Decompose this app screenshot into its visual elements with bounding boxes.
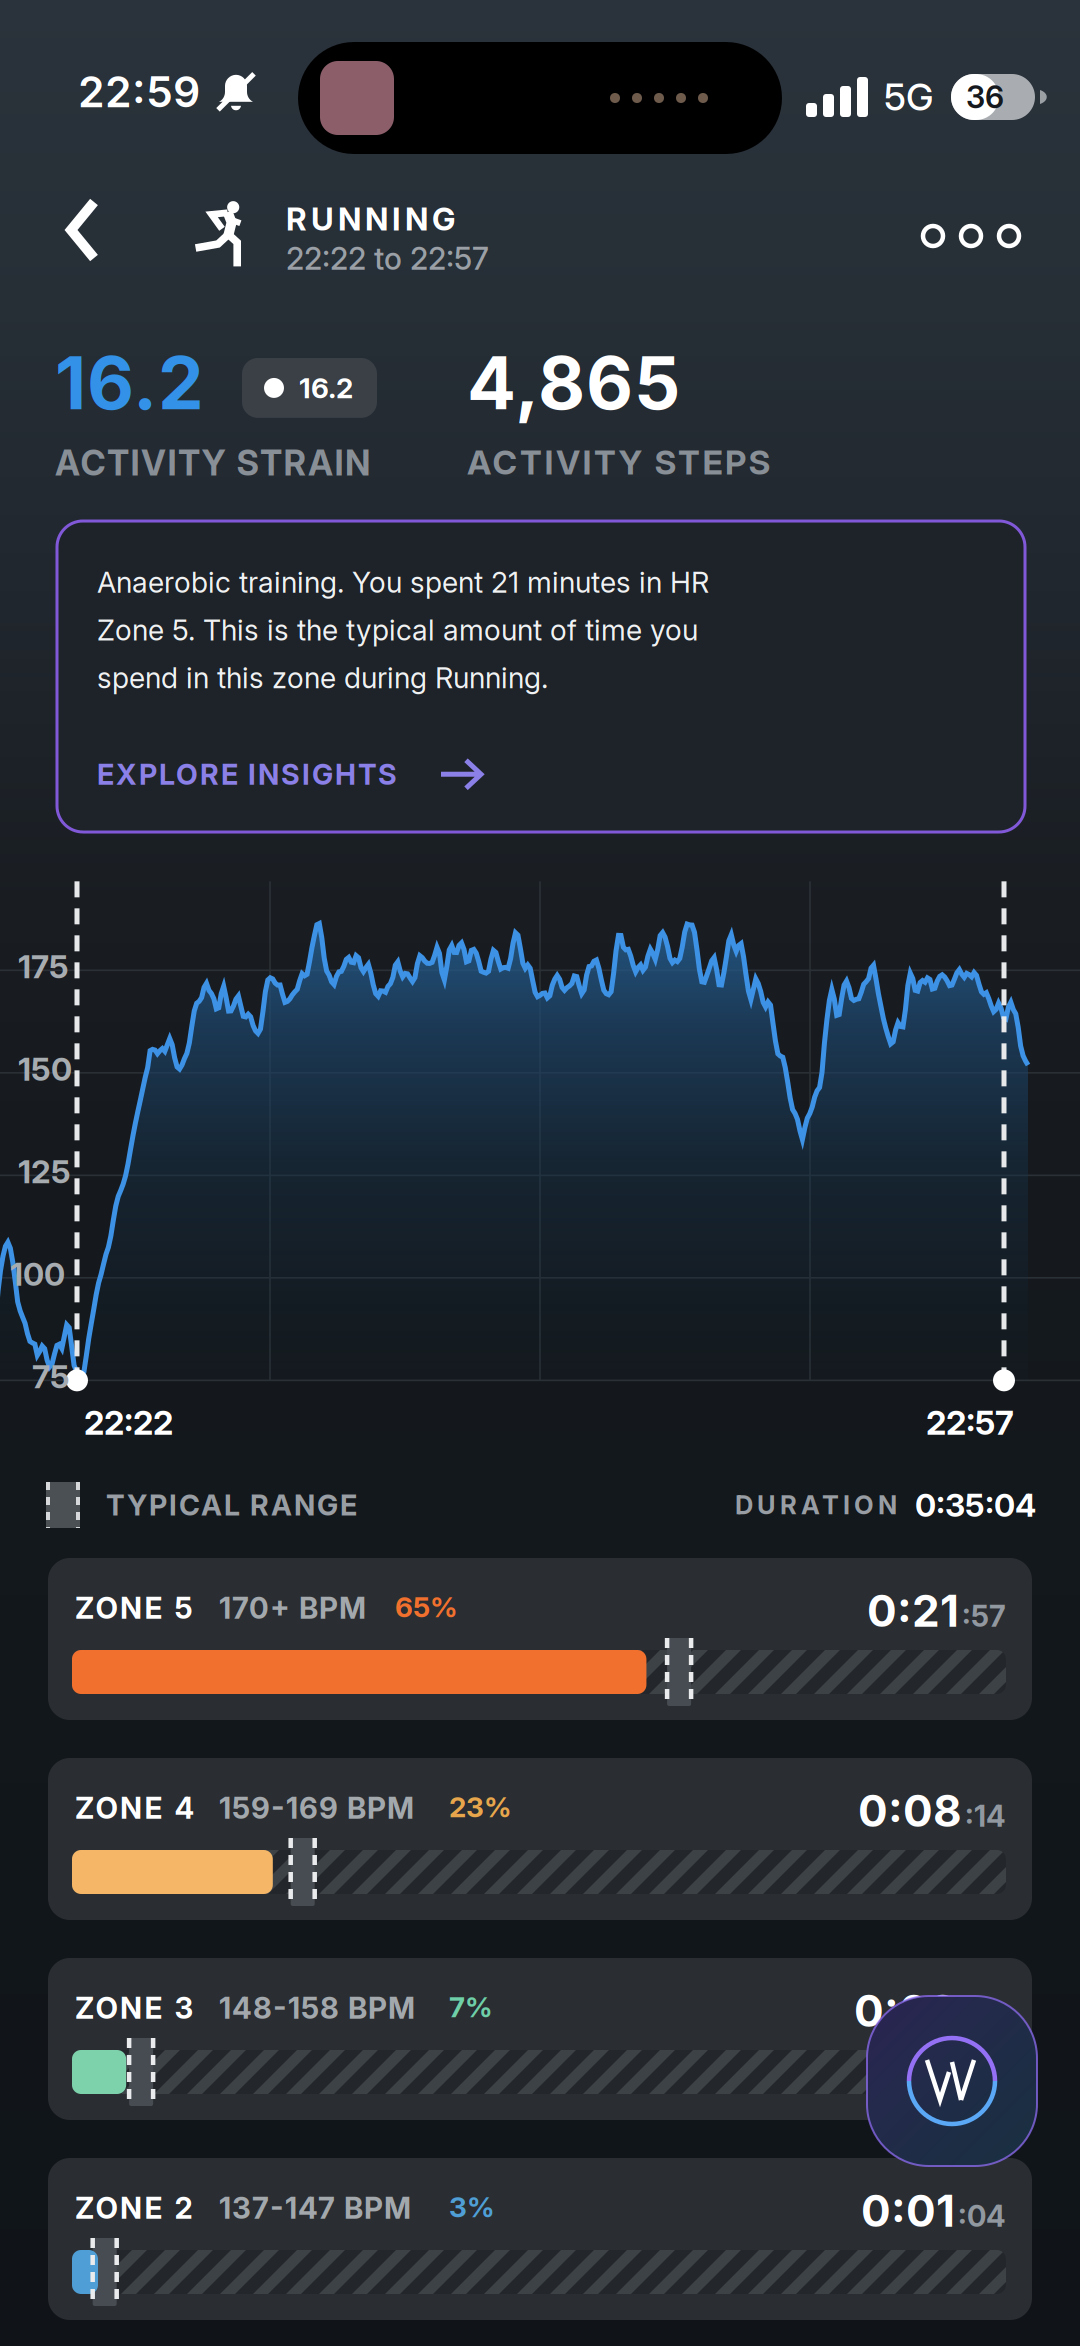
staticText: ACTIVITY STEPS — [467, 442, 770, 483]
staticText: 4,865 — [467, 339, 680, 427]
staticText: 100 — [10, 1255, 65, 1293]
staticText: 0:35:04 — [915, 1486, 1036, 1524]
staticText: 159-169 BPM — [219, 1790, 414, 1826]
button[interactable]: ZONE 3 — [48, 1958, 1032, 2120]
staticText: EXPLORE INSIGHTS — [97, 757, 397, 791]
staticText: ZONE 3 — [75, 1990, 193, 2026]
staticText: 0:02 — [854, 1984, 957, 2037]
staticText: 7% — [449, 1990, 493, 2024]
staticText: ZONE 5 — [75, 1590, 192, 1626]
staticText: Anaerobic training. You spent 21 minutes… — [97, 565, 709, 600]
staticText: ACTIVITY STRAIN — [55, 442, 370, 484]
staticText: 22:22 — [84, 1402, 173, 1443]
staticText: RUNNING — [286, 200, 455, 238]
staticText: 16.2 — [55, 339, 204, 427]
staticText: Zone 5. This is the typical amount of ti… — [97, 613, 698, 647]
staticText: 16.2 — [299, 371, 353, 405]
staticText: :29 — [960, 1998, 1006, 2034]
staticText: 170+ BPM — [219, 1590, 366, 1626]
button[interactable]: ZONE 2 — [48, 2158, 1032, 2320]
staticText: DURATION — [735, 1489, 897, 1520]
staticText: 3% — [449, 2190, 495, 2224]
button[interactable]: WHOOP Coach — [867, 1996, 1037, 2166]
button[interactable]: More options — [906, 186, 1036, 286]
button[interactable]: ZONE 5 — [48, 1558, 1032, 1720]
staticText: :14 — [965, 1798, 1006, 1834]
staticText: 23% — [449, 1790, 512, 1824]
staticText: 175 — [18, 947, 69, 986]
staticText: ZONE 4 — [75, 1790, 194, 1826]
staticText: 65% — [395, 1590, 458, 1624]
staticText: ZONE 2 — [75, 2190, 192, 2226]
staticText: 36 — [966, 78, 1004, 115]
button[interactable]: Back — [52, 170, 172, 300]
staticText: TYPICAL RANGE — [106, 1488, 357, 1522]
staticText: 5G — [884, 74, 933, 120]
staticText: 150 — [18, 1050, 72, 1088]
button[interactable]: EXPLORE INSIGHTS — [97, 749, 485, 799]
staticText: 125 — [18, 1152, 71, 1191]
staticText: 22:57 — [926, 1402, 1014, 1443]
staticText: 0:08 — [858, 1784, 962, 1837]
staticText: spend in this zone during Running. — [97, 660, 548, 695]
staticText: 0:01 — [861, 2184, 955, 2237]
staticText: 0:21 — [867, 1584, 959, 1637]
staticText: 22:22 to 22:57 — [286, 240, 489, 277]
staticText: 75 — [32, 1357, 70, 1396]
staticText: :04 — [958, 2198, 1006, 2234]
button[interactable]: ZONE 4 — [48, 1758, 1032, 1920]
staticText: 137-147 BPM — [219, 2190, 411, 2226]
staticText: :57 — [962, 1598, 1006, 1634]
staticText: 148-158 BPM — [219, 1990, 415, 2026]
staticText: 22:59 — [78, 66, 200, 118]
